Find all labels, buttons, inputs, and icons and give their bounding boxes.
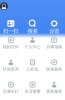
button[interactable]: 个人中心 bbox=[22, 37, 43, 49]
button[interactable]: 我的证件 bbox=[0, 37, 22, 49]
staticText: 公积金 bbox=[26, 67, 38, 72]
button[interactable]: 医保服务 bbox=[43, 59, 65, 72]
staticText: 更多服务 bbox=[46, 89, 62, 94]
button[interactable]: 设置 bbox=[43, 20, 65, 35]
staticText: 搜索 bbox=[27, 28, 37, 35]
button[interactable]: 办事指南 bbox=[43, 37, 65, 49]
button[interactable]: Profile bbox=[0, 2, 8, 11]
button[interactable]: 搜索 bbox=[22, 20, 43, 35]
button[interactable]: 公积金 bbox=[22, 59, 43, 72]
staticText: 生活缴费 bbox=[24, 89, 40, 94]
button[interactable]: 更多服务 bbox=[43, 82, 65, 94]
staticText: 办事指南 bbox=[46, 44, 62, 49]
button[interactable]: 扫一扫 bbox=[0, 20, 22, 35]
button[interactable]: 生活缴费 bbox=[22, 82, 43, 94]
staticText: 医保服务 bbox=[46, 67, 62, 72]
staticText: 设置 bbox=[49, 28, 59, 35]
staticText: 扫一扫 bbox=[3, 28, 18, 35]
button[interactable]: 社保查询 bbox=[0, 59, 22, 72]
staticText: 社保查询 bbox=[3, 67, 19, 72]
staticText: 我的证件 bbox=[3, 44, 19, 49]
button[interactable]: 交通出行 bbox=[0, 82, 22, 94]
staticText: 交通出行 bbox=[3, 89, 19, 94]
staticText: 个人中心 bbox=[24, 44, 40, 49]
